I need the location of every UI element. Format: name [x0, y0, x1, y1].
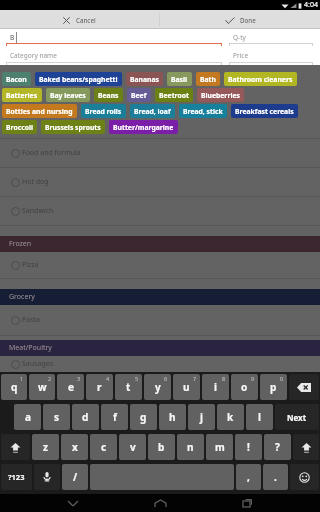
staticText: Broccoli: [6, 123, 33, 132]
button[interactable]: Bay leaves: [46, 88, 90, 102]
button[interactable]: Bread rolls: [81, 104, 126, 118]
button[interactable]: j: [188, 404, 215, 430]
staticText: Brussels sprouts: [45, 123, 101, 132]
staticText: Sandwich: [22, 206, 54, 216]
button[interactable]: d: [72, 404, 99, 430]
button[interactable]: y: [144, 374, 171, 400]
button[interactable]: Batteries: [2, 88, 42, 102]
button[interactable]: Cancel: [0, 10, 159, 29]
button[interactable]: l: [246, 404, 273, 430]
button[interactable]: i: [202, 374, 229, 400]
button[interactable]: Bread, loaf: [130, 104, 175, 118]
staticText: 1: [20, 375, 24, 382]
staticText: b: [158, 440, 165, 454]
button[interactable]: Bath: [196, 72, 220, 86]
button[interactable]: Home: [147, 494, 173, 512]
button[interactable]: r: [86, 374, 113, 400]
staticText: Frozen: [9, 239, 32, 249]
button[interactable]: u: [173, 374, 200, 400]
staticText: h: [169, 410, 176, 424]
staticText: 6: [164, 375, 168, 382]
button[interactable]: Beans: [94, 88, 123, 102]
button[interactable]: p: [260, 374, 287, 400]
button[interactable]: Price: [226, 46, 320, 65]
button[interactable]: Voice input: [34, 464, 60, 490]
button[interactable]: B: [0, 29, 226, 46]
button[interactable]: a: [14, 404, 41, 430]
button[interactable]: ?: [264, 434, 291, 460]
staticText: g: [140, 410, 147, 424]
button[interactable]: m: [206, 434, 233, 460]
button[interactable]: c: [90, 434, 117, 460]
button[interactable]: k: [217, 404, 244, 430]
button[interactable]: q: [1, 374, 27, 400]
staticText: Bread, stick: [183, 107, 223, 116]
staticText: Grocery: [9, 292, 35, 302]
button[interactable]: w: [29, 374, 55, 400]
button[interactable]: x: [61, 434, 88, 460]
button[interactable]: s: [43, 404, 70, 430]
button[interactable]: Beetroot: [155, 88, 193, 102]
staticText: v: [130, 440, 136, 454]
button[interactable]: ,: [236, 464, 261, 490]
button[interactable]: Done: [160, 10, 320, 29]
button[interactable]: Butter/margarine: [109, 120, 178, 134]
staticText: Baked beans/spaghetti: [39, 75, 118, 84]
button[interactable]: z: [32, 434, 59, 460]
button[interactable]: Emoji: [290, 464, 319, 490]
staticText: .: [274, 470, 277, 484]
button[interactable]: n: [177, 434, 204, 460]
button[interactable]: Baked beans/spaghetti: [35, 72, 122, 86]
staticText: Price: [233, 51, 249, 60]
button[interactable]: Shift: [293, 434, 319, 460]
button[interactable]: v: [119, 434, 146, 460]
staticText: 9: [251, 375, 255, 382]
button[interactable]: o: [231, 374, 258, 400]
button[interactable]: Bathroom cleaners: [224, 72, 297, 86]
button[interactable]: /: [62, 464, 88, 490]
button[interactable]: Bananas: [126, 72, 163, 86]
button[interactable]: Category name: [0, 46, 226, 65]
staticText: Bottles and nursing: [6, 107, 73, 116]
button[interactable]: Backspace: [289, 374, 319, 400]
staticText: p: [270, 380, 277, 394]
button[interactable]: f: [101, 404, 128, 430]
button[interactable]: Bread, stick: [179, 104, 227, 118]
button[interactable]: g: [130, 404, 157, 430]
staticText: Q-ty: [233, 33, 246, 42]
button[interactable]: Broccoli: [2, 120, 37, 134]
button[interactable]: Symbols: [1, 464, 32, 490]
button[interactable]: h: [159, 404, 186, 430]
button[interactable]: Brussels sprouts: [41, 120, 105, 134]
staticText: Bread rolls: [85, 107, 122, 116]
staticText: ?123: [8, 472, 25, 482]
button[interactable]: Basil: [167, 72, 192, 86]
button[interactable]: b: [148, 434, 175, 460]
button[interactable]: Next: [275, 404, 319, 430]
staticText: z: [43, 440, 48, 454]
button[interactable]: Breakfast cereals: [231, 104, 298, 118]
button[interactable]: Bottles and nursing: [2, 104, 77, 118]
button[interactable]: !: [235, 434, 262, 460]
button[interactable]: Recent apps: [234, 494, 260, 512]
button[interactable]: Blueberries: [197, 88, 244, 102]
button[interactable]: Beef: [127, 88, 151, 102]
button[interactable]: .: [263, 464, 288, 490]
staticText: o: [241, 380, 248, 394]
button[interactable]: Bacon: [2, 72, 31, 86]
button[interactable]: t: [115, 374, 142, 400]
staticText: Pasta: [22, 315, 40, 325]
button[interactable]: Shift: [1, 434, 30, 460]
button[interactable]: e: [57, 374, 84, 400]
staticText: Hot dog: [22, 177, 49, 187]
button[interactable]: Q-ty: [226, 29, 320, 46]
staticText: m: [215, 440, 225, 454]
button[interactable]: Back: [60, 494, 86, 512]
